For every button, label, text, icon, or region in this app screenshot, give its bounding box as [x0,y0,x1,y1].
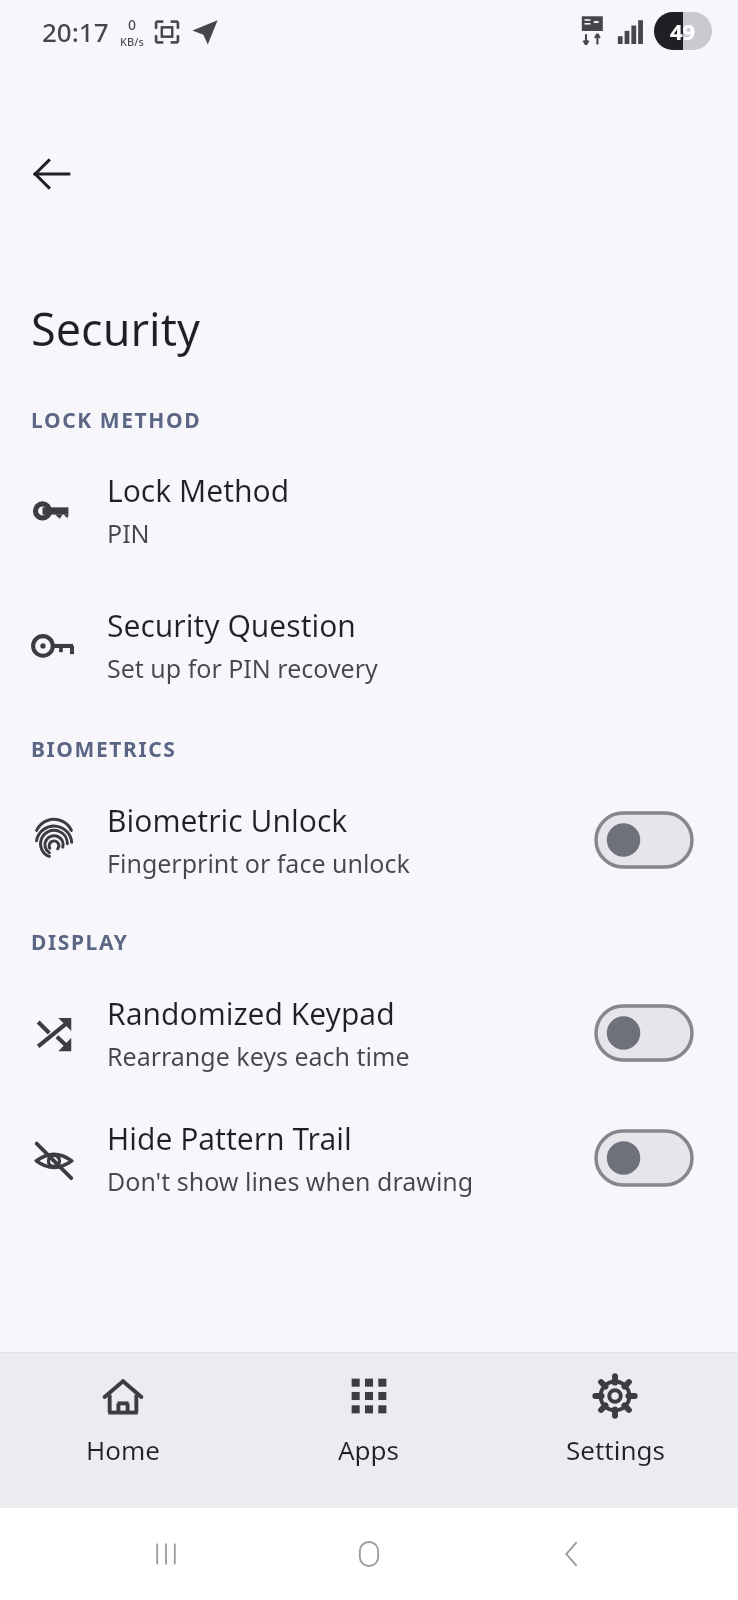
staticText: Home [86,1432,160,1467]
button[interactable]: Randomized Keypad [0,993,738,1073]
staticText: Apps [338,1432,400,1467]
staticText: LOCK METHOD [31,406,202,435]
staticText: 0 [128,15,137,34]
button[interactable]: Home [0,1353,246,1467]
staticText: 20:17 [42,14,109,49]
staticText: 49 [670,16,696,46]
staticText: PIN [107,516,150,550]
button[interactable]: Apps [246,1353,492,1467]
button[interactable]: Recent apps [129,1517,203,1591]
button[interactable]: Biometric Unlock toggle [596,813,692,867]
button[interactable]: Security Question [0,605,738,685]
staticText: Randomized Keypad [107,993,395,1034]
staticText: Rearrange keys each time [107,1039,410,1073]
staticText: Set up for PIN recovery [107,651,378,685]
button[interactable]: Lock Method [0,470,738,550]
staticText: Security Question [107,605,356,646]
button[interactable]: Settings [492,1353,738,1467]
staticText: KB/s [120,34,144,49]
button[interactable]: Hide Pattern Trail toggle [596,1131,692,1185]
staticText: Hide Pattern Trail [107,1118,352,1159]
staticText: Don't show lines when drawing [107,1164,474,1198]
staticText: Biometric Unlock [107,800,348,841]
staticText: Lock Method [107,470,290,511]
staticText: Security [31,298,200,359]
button[interactable]: Back [14,136,90,212]
staticText: DISPLAY [31,928,129,957]
button[interactable]: Randomized Keypad toggle [596,1006,692,1060]
button[interactable]: Home [332,1517,406,1591]
staticText: Settings [566,1432,665,1467]
staticText: BIOMETRICS [31,735,177,764]
button[interactable]: Biometric Unlock [0,800,738,880]
button[interactable]: Back [535,1517,609,1591]
button[interactable]: Hide Pattern Trail [0,1118,738,1198]
staticText: Fingerprint or face unlock [107,846,410,880]
